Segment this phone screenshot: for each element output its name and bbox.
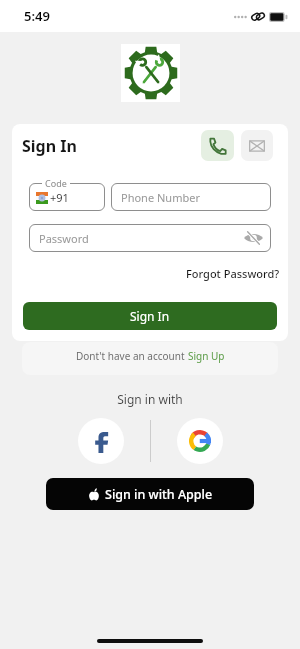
staticText: Sign In	[22, 135, 77, 157]
button[interactable]: +91	[29, 183, 105, 211]
button[interactable]: Forgot Password?	[186, 266, 280, 281]
staticText: Sign In	[130, 308, 170, 324]
staticText: Sign in with	[0, 391, 300, 407]
button[interactable]: Sign in with phone	[201, 130, 234, 161]
staticText: Sign in with Apple	[105, 486, 213, 503]
staticText: Sign Up	[188, 349, 225, 363]
staticText: 5:49	[24, 7, 50, 25]
staticText: Code	[45, 177, 67, 189]
button[interactable]: Password	[29, 224, 271, 252]
button[interactable]: Toggle password visibility	[241, 227, 265, 249]
button[interactable]: Dont't have an account	[22, 342, 278, 375]
staticText: Phone Number	[121, 190, 200, 205]
button[interactable]: Sign In	[23, 302, 277, 330]
button[interactable]: Sign in with Facebook	[78, 418, 124, 464]
staticText: Dont't have an account	[76, 349, 188, 363]
staticText: Password	[39, 231, 89, 246]
button[interactable]: Phone Number	[111, 183, 271, 211]
staticText: +91	[50, 190, 69, 205]
button[interactable]: Sign in with Google	[177, 418, 223, 464]
button[interactable]: Sign in with Apple	[46, 478, 254, 510]
button[interactable]: Sign in with email	[241, 130, 273, 161]
